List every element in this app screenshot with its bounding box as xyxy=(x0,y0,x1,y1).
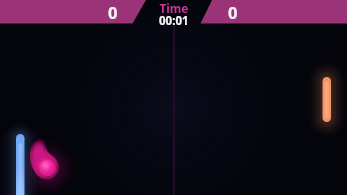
button[interactable]: Pong game playfield xyxy=(0,0,347,195)
